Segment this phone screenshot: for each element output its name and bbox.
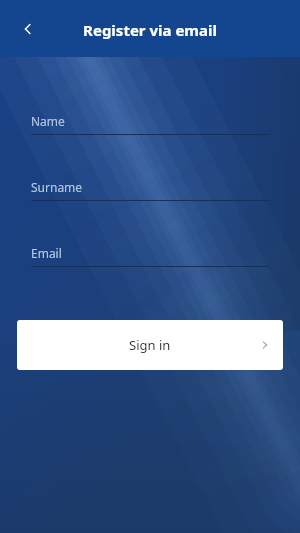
button[interactable]: Back — [12, 13, 44, 45]
button[interactable]: Name — [31, 113, 269, 135]
staticText: Sign in — [129, 336, 171, 354]
staticText: Surname — [31, 179, 83, 195]
staticText: Register via email — [83, 20, 217, 40]
button[interactable]: Sign in — [17, 320, 283, 370]
staticText: Name — [31, 113, 65, 129]
staticText: Email — [31, 245, 62, 261]
button[interactable]: Surname — [31, 179, 269, 201]
button[interactable]: Email — [31, 245, 269, 267]
